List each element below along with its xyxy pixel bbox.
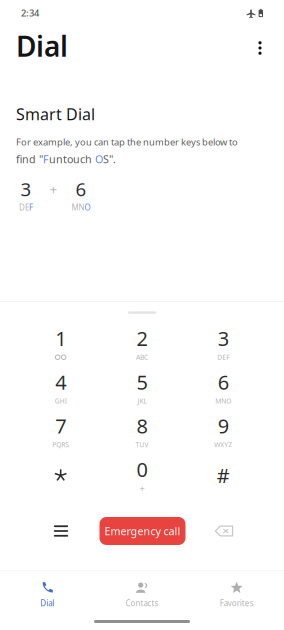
button[interactable]: 4 xyxy=(20,368,101,411)
button[interactable]: 5 xyxy=(101,368,183,411)
button[interactable]: Dial xyxy=(0,579,95,609)
staticText: Emergency call xyxy=(104,524,180,538)
staticText: 2 xyxy=(136,325,147,352)
button[interactable] xyxy=(20,455,101,499)
staticText: Favorites xyxy=(220,598,254,608)
button[interactable]: 1 xyxy=(20,324,101,368)
button[interactable]: Delete xyxy=(201,516,247,546)
staticText: O xyxy=(95,152,103,166)
staticText: O xyxy=(84,202,90,213)
staticText: 3 xyxy=(20,177,31,201)
staticText: For example, you can tap the number keys… xyxy=(16,136,238,148)
staticText: find " xyxy=(16,152,43,166)
staticText: 5 xyxy=(136,369,147,395)
button[interactable]: Contacts xyxy=(95,579,189,609)
button[interactable]: 3 xyxy=(183,324,264,368)
staticText: Smart Dial xyxy=(16,103,95,125)
button[interactable]: 8 xyxy=(101,411,183,455)
staticText: 2:34 xyxy=(21,7,39,19)
button[interactable]: Keypad options xyxy=(38,516,84,546)
staticText: 1 xyxy=(55,325,66,352)
staticText: 8 xyxy=(136,412,147,439)
staticText: PQRS xyxy=(52,440,69,449)
button[interactable]: 6 xyxy=(183,368,264,411)
staticText: Dial xyxy=(40,598,54,608)
staticText: + xyxy=(139,482,144,495)
staticText: F xyxy=(43,152,49,166)
staticText: Dial xyxy=(16,27,68,65)
staticText: DE xyxy=(19,202,29,213)
staticText: 6 xyxy=(218,369,229,395)
staticText: 0 xyxy=(136,456,147,483)
button[interactable]: 9 xyxy=(183,411,264,455)
staticText: MNO xyxy=(215,396,231,405)
button[interactable]: Emergency call xyxy=(99,517,185,545)
button[interactable]: More options xyxy=(252,31,268,61)
staticText: untouch xyxy=(49,152,95,166)
staticText: TUV xyxy=(135,440,148,449)
staticText: Contacts xyxy=(125,598,158,608)
staticText: ABC xyxy=(136,353,148,362)
staticText: WXYZ xyxy=(214,440,232,449)
button[interactable]: 0 xyxy=(101,455,183,499)
staticText: S". xyxy=(103,152,116,166)
button[interactable]: Favorites xyxy=(189,579,284,609)
staticText: DEF xyxy=(217,353,229,362)
button[interactable]: # xyxy=(183,455,264,499)
staticText: 9 xyxy=(218,412,229,439)
button[interactable]: 2 xyxy=(101,324,183,368)
staticText: F xyxy=(29,202,33,213)
staticText: JKL xyxy=(137,396,146,405)
staticText: 6 xyxy=(75,177,86,201)
staticText: 7 xyxy=(55,412,66,439)
staticText: 3 xyxy=(218,325,229,352)
staticText: MN xyxy=(71,202,84,213)
staticText: + xyxy=(49,180,57,198)
staticText: GHI xyxy=(55,396,67,405)
button[interactable]: 7 xyxy=(20,411,101,455)
staticText: 4 xyxy=(55,369,66,395)
staticText: # xyxy=(217,462,230,489)
